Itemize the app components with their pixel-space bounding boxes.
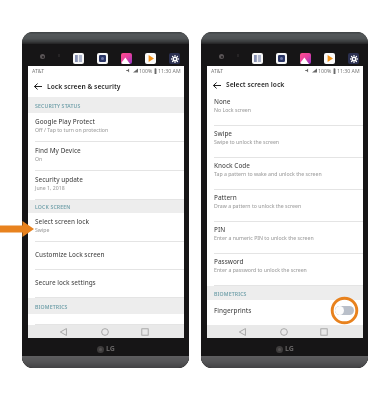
button[interactable]: None — [207, 94, 363, 126]
staticText: BIOMETRICS — [35, 303, 68, 310]
staticText: Swipe — [214, 129, 233, 138]
button[interactable]: Camera — [276, 53, 287, 64]
staticText: LOCK SCREEN — [35, 203, 71, 210]
staticText: AT&T — [32, 67, 45, 74]
staticText: Tap a pattern to wake and unlock the scr… — [214, 170, 322, 177]
button[interactable]: PIN — [207, 222, 363, 254]
staticText: Draw a pattern to unlock the screen — [214, 202, 302, 209]
button[interactable]: Pattern — [207, 190, 363, 222]
button[interactable]: Password — [207, 254, 363, 286]
button[interactable]: Camera — [97, 53, 108, 64]
button[interactable]: Recents — [315, 325, 333, 338]
staticText: Find My Device — [35, 146, 81, 155]
button[interactable]: Settings — [169, 53, 180, 64]
staticText: On — [35, 155, 43, 162]
button[interactable]: News — [73, 53, 84, 64]
button[interactable]: Customize Lock screen — [28, 242, 184, 270]
button[interactable]: Secure lock settings — [28, 270, 184, 298]
button[interactable]: Find My Device — [28, 142, 184, 171]
staticText: Swipe to unlock the screen — [214, 138, 280, 145]
staticText: 11:30 AM — [158, 67, 181, 74]
staticText: Knock Code — [214, 161, 250, 170]
button[interactable]: News — [252, 53, 263, 64]
staticText: June 1, 2018 — [35, 184, 65, 191]
staticText: 100% — [318, 67, 332, 74]
staticText: Password — [214, 257, 244, 266]
button[interactable]: Gallery — [121, 53, 132, 64]
staticText: Off / Tap to turn on protection — [35, 126, 109, 133]
staticText: Secure lock settings — [35, 278, 96, 287]
staticText: Swipe — [35, 226, 50, 233]
staticText: Fingerprints — [214, 306, 252, 315]
staticText: Select screen lock — [226, 80, 285, 89]
staticText: Enter a numeric PIN to unlock the screen — [214, 234, 314, 241]
staticText: LG — [106, 344, 115, 354]
button[interactable]: Back — [233, 325, 251, 338]
staticText: BIOMETRICS — [214, 290, 247, 297]
button[interactable]: Back — [54, 325, 72, 338]
staticText: Fingerprints — [35, 322, 73, 325]
staticText: Enter a password to unlock the screen — [214, 266, 307, 273]
staticText: AT&T — [211, 67, 224, 74]
staticText: Security update — [35, 175, 83, 184]
staticText: Customize Lock screen — [35, 250, 105, 259]
staticText: Select screen lock — [35, 217, 89, 226]
button[interactable]: Google Play Protect — [28, 113, 184, 142]
button[interactable]: Play — [145, 53, 156, 64]
staticText: 11:30 AM — [337, 67, 360, 74]
staticText: PIN — [214, 225, 226, 234]
button[interactable]: Play — [324, 53, 335, 64]
button[interactable]: Settings — [348, 53, 359, 64]
button[interactable]: Home — [96, 325, 114, 338]
staticText: SECURITY STATUS — [35, 102, 81, 109]
button[interactable]: Fingerprints — [207, 300, 363, 324]
button[interactable]: Back — [33, 81, 43, 91]
button[interactable]: Select screen lock — [28, 213, 184, 242]
button[interactable]: Home — [275, 325, 293, 338]
button[interactable]: Recents — [136, 325, 154, 338]
staticText: Lock screen & security — [47, 82, 121, 91]
button[interactable]: Knock Code — [207, 158, 363, 190]
staticText: No Lock screen — [214, 106, 251, 113]
button[interactable]: Back — [212, 80, 222, 90]
button[interactable]: Gallery — [300, 53, 311, 64]
button[interactable]: Swipe — [207, 126, 363, 158]
staticText: Google Play Protect — [35, 117, 95, 126]
staticText: None — [214, 97, 231, 106]
button[interactable]: Fingerprints — [28, 314, 184, 325]
button[interactable]: Security update — [28, 171, 184, 200]
staticText: LG — [285, 344, 294, 354]
button[interactable]: Fingerprints toggle — [331, 297, 358, 324]
staticText: Pattern — [214, 193, 237, 202]
staticText: 100% — [139, 67, 153, 74]
